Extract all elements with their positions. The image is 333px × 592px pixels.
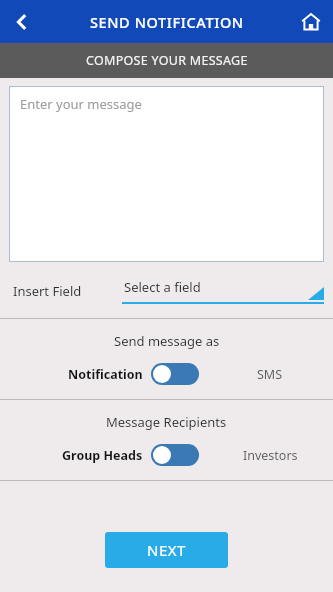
- staticText: Send message as: [114, 332, 220, 350]
- button[interactable]: Toggle: [151, 444, 199, 466]
- staticText: NEXT: [147, 540, 186, 560]
- staticText: Insert Field: [13, 282, 82, 300]
- button[interactable]: Home: [289, 0, 333, 43]
- staticText: SMS: [257, 366, 283, 383]
- button[interactable]: NEXT: [105, 532, 228, 568]
- staticText: Message Recipients: [106, 413, 227, 431]
- button[interactable]: Enter your message: [9, 86, 324, 262]
- button[interactable]: Back: [0, 0, 44, 43]
- staticText: Select a field: [124, 278, 201, 296]
- staticText: Group Heads: [62, 447, 143, 464]
- staticText: COMPOSE YOUR MESSAGE: [86, 52, 248, 69]
- button[interactable]: Select a field: [122, 278, 324, 304]
- staticText: Notification: [68, 366, 143, 383]
- staticText: Enter your message: [20, 95, 142, 113]
- button[interactable]: Toggle: [151, 363, 199, 385]
- staticText: SEND NOTIFICATION: [90, 12, 244, 32]
- staticText: Investors: [243, 447, 298, 464]
